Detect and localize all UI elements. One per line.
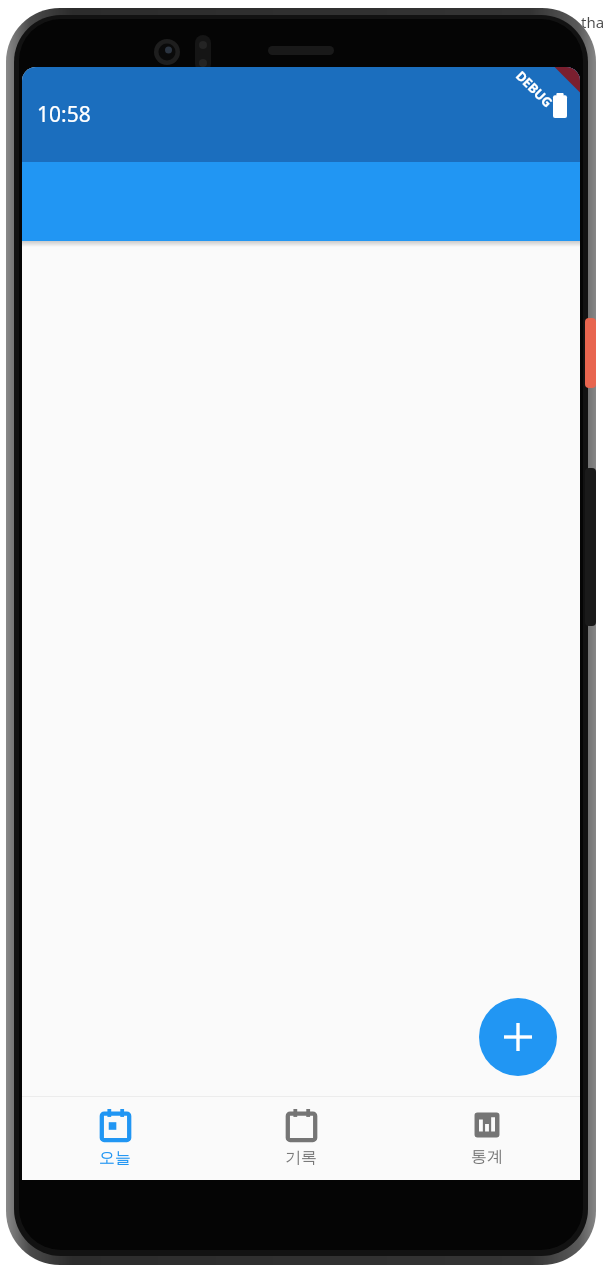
- staticText: 10:58: [37, 100, 91, 129]
- staticText: 오늘: [99, 1148, 131, 1168]
- button[interactable]: 통계: [394, 1096, 580, 1180]
- staticText: 통계: [471, 1147, 503, 1167]
- button[interactable]: Add: [479, 998, 557, 1076]
- button[interactable]: 기록: [208, 1096, 394, 1180]
- staticText: DEBUG: [512, 67, 557, 111]
- staticText: tha: [581, 12, 603, 32]
- button[interactable]: 오늘: [22, 1096, 208, 1180]
- staticText: 기록: [285, 1148, 317, 1168]
